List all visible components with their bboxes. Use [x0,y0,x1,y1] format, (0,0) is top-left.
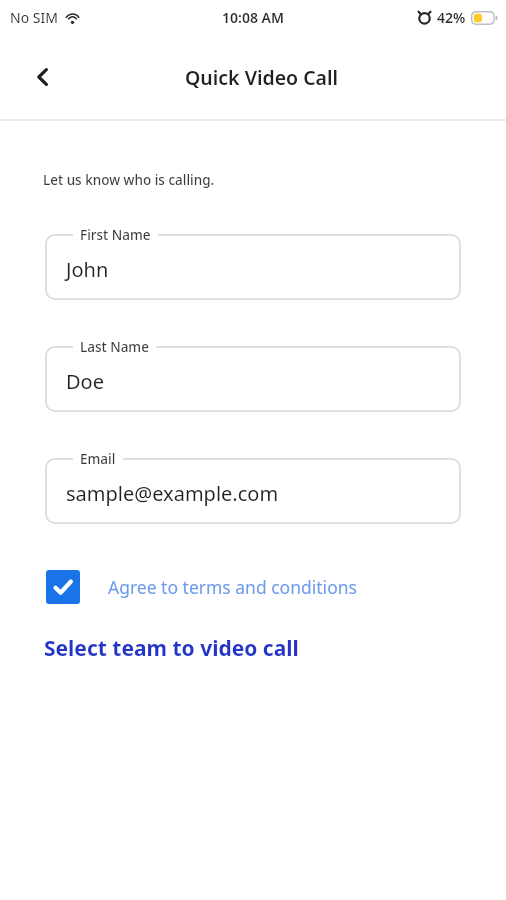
button[interactable]: Back [20,54,66,100]
staticText: Quick Video Call [185,64,339,91]
staticText: 42% [437,8,466,27]
button[interactable]: Agree to terms and conditions [46,570,357,604]
staticText: Email [80,450,116,468]
button[interactable]: John [45,226,461,300]
staticText: John [66,256,109,283]
staticText: Last Name [80,338,149,356]
staticText: First Name [80,226,151,244]
staticText: Let us know who is calling. [43,171,215,189]
staticText: 10:08 AM [222,8,284,27]
other: Alarm [418,11,431,24]
staticText: sample@example.com [66,480,279,507]
other: Battery 42% [471,11,498,25]
button[interactable]: Doe [45,338,461,412]
staticText: Agree to terms and conditions [108,575,357,599]
staticText: No SIM [10,8,58,27]
staticText: Doe [66,368,104,395]
staticText: Select team to video call [44,634,299,663]
button[interactable]: Select team to video call [44,631,299,666]
button[interactable]: sample@example.com [45,450,461,524]
other: Wi-Fi [65,12,80,24]
